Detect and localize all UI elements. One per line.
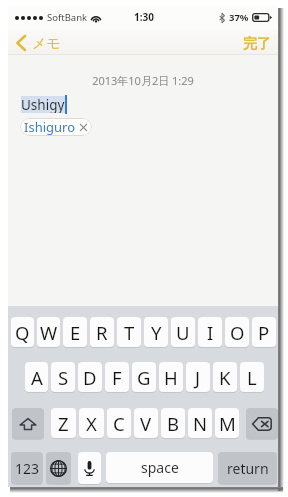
button[interactable]: V <box>134 408 158 438</box>
button[interactable]: Ishiguro <box>20 118 92 136</box>
staticText: R <box>96 320 108 345</box>
staticText: V <box>140 411 152 436</box>
staticText: D <box>83 365 97 390</box>
button[interactable]: G <box>132 362 156 392</box>
staticText: Ishiguro <box>24 118 76 136</box>
button[interactable]: X <box>79 408 104 438</box>
staticText: I <box>207 320 214 345</box>
staticText: Ushigy <box>21 96 65 113</box>
button[interactable]: P <box>252 317 276 347</box>
staticText: N <box>193 411 208 436</box>
button[interactable]: U <box>171 317 195 347</box>
staticText: L <box>247 365 257 390</box>
button[interactable]: M <box>215 408 239 438</box>
button[interactable]: L <box>240 362 264 392</box>
button[interactable]: space <box>106 452 213 483</box>
button[interactable]: I <box>198 317 222 347</box>
staticText: P <box>258 320 270 345</box>
staticText: U <box>176 320 190 345</box>
staticText: F <box>112 365 122 390</box>
button[interactable]: メモ <box>8 30 69 54</box>
staticText: X <box>86 411 97 436</box>
button[interactable]: Dictation <box>78 452 101 484</box>
button[interactable]: Switch keyboard <box>46 452 71 484</box>
button[interactable]: R <box>90 317 114 347</box>
button[interactable]: 完了 <box>235 30 278 54</box>
staticText: M <box>219 411 236 436</box>
button[interactable]: B <box>161 408 185 438</box>
button[interactable]: N <box>188 408 212 438</box>
staticText: W <box>40 320 58 345</box>
staticText: 37% <box>229 11 249 24</box>
staticText: 2013年10月2日 1:29 <box>8 73 278 88</box>
button[interactable]: D <box>78 362 102 392</box>
staticText: C <box>113 411 125 436</box>
staticText: Y <box>151 320 162 345</box>
button[interactable]: K <box>213 362 237 392</box>
button[interactable]: J <box>186 362 210 392</box>
staticText: H <box>164 365 178 390</box>
button[interactable]: C <box>107 408 131 438</box>
button[interactable]: S <box>51 362 75 392</box>
staticText: Q <box>15 320 30 345</box>
staticText: space <box>141 458 179 477</box>
staticText: K <box>219 365 231 390</box>
button[interactable]: E <box>63 317 87 347</box>
staticText: E <box>70 320 81 345</box>
button[interactable]: Q <box>11 317 34 347</box>
button[interactable]: Z <box>51 408 76 438</box>
staticText: T <box>124 320 135 345</box>
staticText: A <box>31 365 43 390</box>
button[interactable]: return <box>218 452 277 484</box>
button[interactable]: T <box>117 317 141 347</box>
staticText: S <box>58 365 69 390</box>
button[interactable]: Shift <box>12 408 44 439</box>
staticText: SoftBank <box>47 11 88 24</box>
staticText: メモ <box>32 35 61 53</box>
button[interactable]: F <box>105 362 129 392</box>
button[interactable]: Y <box>144 317 168 347</box>
staticText: Z <box>58 411 69 436</box>
staticText: 1:30 <box>134 10 154 24</box>
staticText: O <box>230 320 245 345</box>
staticText: return <box>227 459 269 478</box>
staticText: B <box>167 411 180 436</box>
button[interactable]: 123 <box>11 452 43 484</box>
staticText: G <box>137 365 151 390</box>
staticText: 123 <box>15 459 40 478</box>
button[interactable]: O <box>225 317 249 347</box>
staticText: 完了 <box>243 35 271 53</box>
button[interactable]: H <box>159 362 183 392</box>
button[interactable]: A <box>25 362 48 392</box>
staticText: J <box>195 365 201 390</box>
button[interactable]: W <box>37 317 60 347</box>
button[interactable]: Backspace <box>246 408 278 439</box>
